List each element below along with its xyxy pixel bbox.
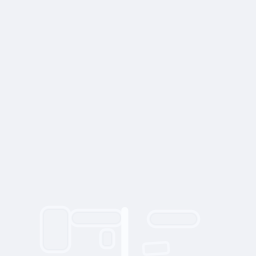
button[interactable]: Badge (100, 229, 114, 248)
button[interactable]: Field (70, 210, 123, 226)
